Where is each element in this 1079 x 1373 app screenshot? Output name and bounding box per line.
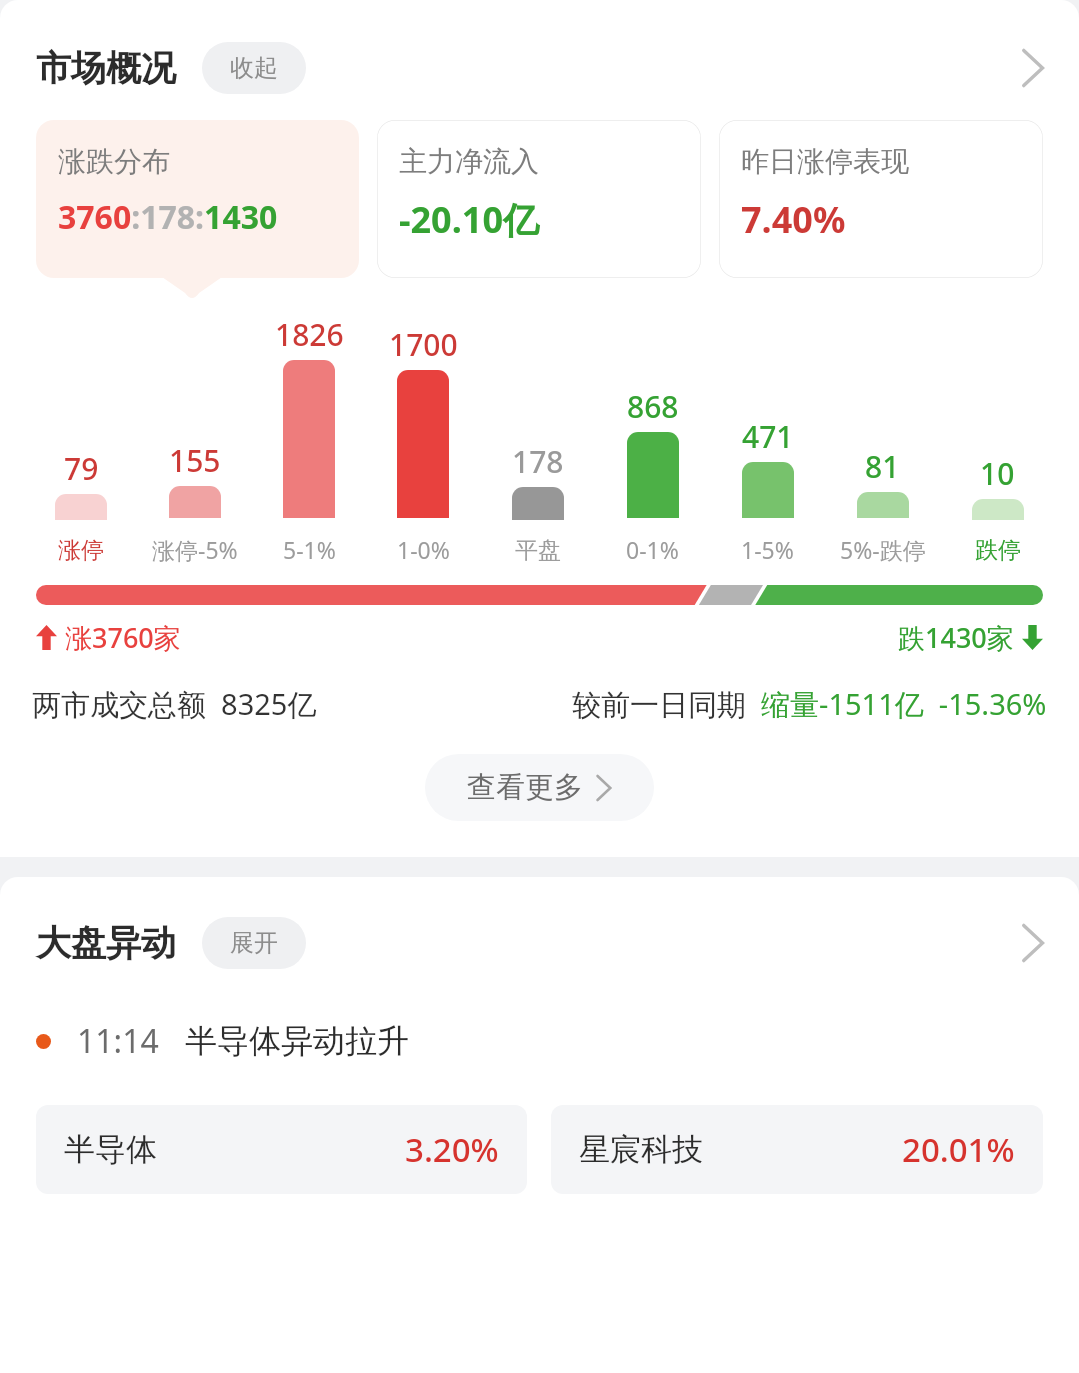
button[interactable]: 星宸科技 [551,1105,1043,1194]
staticText: -20.10亿 [399,195,540,244]
button[interactable]: 81 [825,300,940,565]
button[interactable]: 79 [24,300,138,565]
staticText: 平盘 [515,536,561,565]
staticText: 178 [512,441,564,482]
button[interactable]: 868 [595,300,710,565]
button[interactable]: 市场概况更多 [1009,45,1055,91]
staticText: 涨3760家 [65,619,181,656]
button[interactable]: 涨跌分布 [36,120,359,278]
staticText: 1-5% [741,534,794,565]
staticText: 11:14 [77,1019,159,1063]
button[interactable]: 查看更多 [425,754,654,821]
staticText: 两市成交总额 8325亿 [32,684,317,724]
staticText: 半导体异动拉升 [185,1021,409,1061]
staticText: 主力净流入 [399,144,539,179]
staticText: 3.20% [405,1127,499,1172]
button[interactable]: 昨日涨停表现 [719,120,1043,278]
staticText: 20.01% [902,1127,1015,1172]
staticText: 涨停 [58,536,104,565]
staticText: 昨日涨停表现 [741,144,909,179]
staticText: 10 [980,453,1015,494]
staticText: 868 [627,386,679,427]
staticText: 1700 [389,324,458,365]
button[interactable]: 展开 [202,917,306,969]
staticText: 0-1% [626,534,679,565]
staticText: 81 [865,446,900,487]
button[interactable]: 471 [710,300,825,565]
staticText: 跌停 [975,536,1021,565]
staticText: 大盘异动 [36,921,176,965]
button[interactable]: 大盘异动更多 [1009,920,1055,966]
staticText: 较前一日同期 缩量-1511亿 -15.36% [572,684,1047,724]
staticText: 79 [64,448,99,489]
button[interactable]: 半导体 [36,1105,527,1194]
button[interactable]: 10 [940,300,1055,565]
staticText: 3760:178:1430 [58,195,278,239]
staticText: 5%-跌停 [840,534,926,565]
staticText: 471 [742,416,794,457]
staticText: 涨跌分布 [58,144,170,179]
button[interactable]: 主力净流入 [377,120,701,278]
staticText: 市场概况 [36,46,176,90]
staticText: 7.40% [741,195,846,244]
staticText: 跌1430家 [898,619,1014,656]
button[interactable]: 市场概况 [0,42,1079,94]
button[interactable]: 155 [138,300,252,565]
staticText: 155 [169,440,221,481]
staticText: 半导体 [64,1130,157,1169]
button[interactable]: 178 [480,300,595,565]
staticText: 1826 [275,314,344,355]
staticText: 1-0% [397,534,450,565]
button[interactable]: 收起 [202,42,306,94]
staticText: 查看更多 [467,769,583,806]
button[interactable]: 11:14 [0,1019,1079,1063]
staticText: 5-1% [283,534,336,565]
staticText: 星宸科技 [579,1130,703,1169]
button[interactable]: 大盘异动 [0,917,1079,969]
staticText: 展开 [230,928,278,958]
button[interactable]: 1826 [252,300,366,565]
staticText: 收起 [230,53,278,83]
staticText: 涨停-5% [152,534,238,565]
button[interactable]: 1700 [366,300,480,565]
